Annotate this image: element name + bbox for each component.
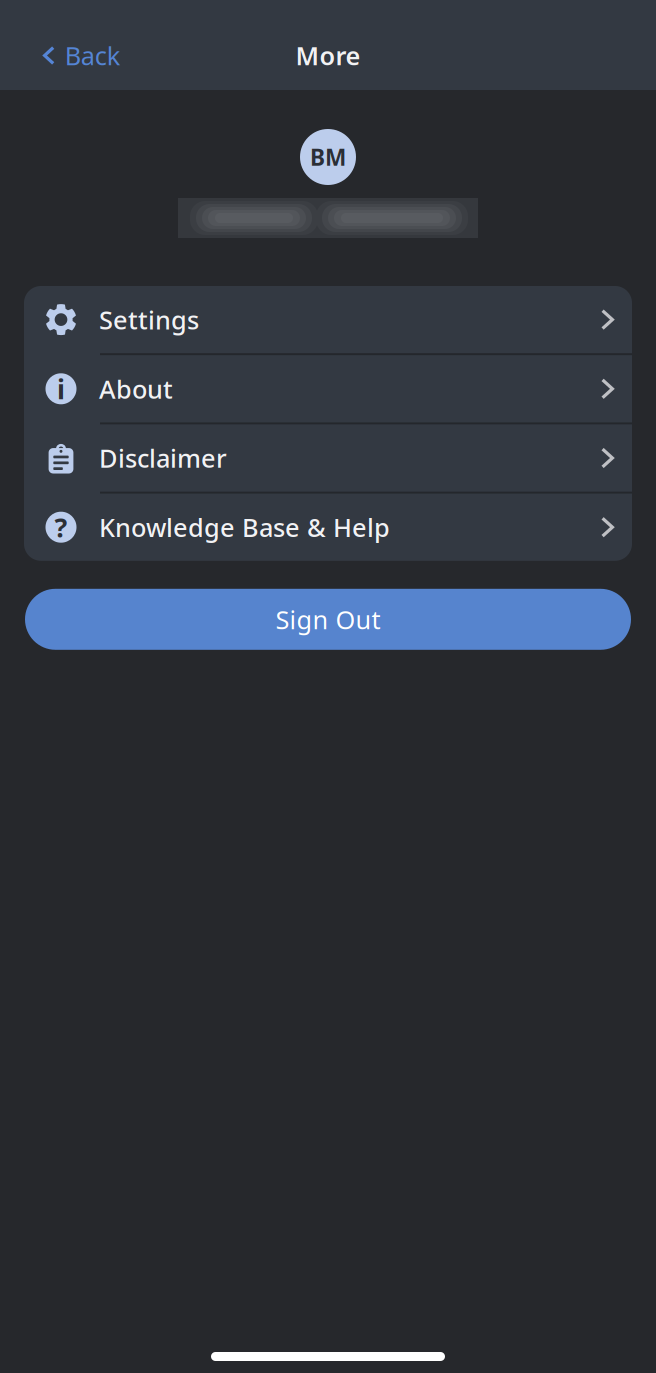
button[interactable]: ? xyxy=(24,494,632,561)
button[interactable]: i xyxy=(24,355,632,422)
staticText: Knowledge Base & Help xyxy=(99,510,390,544)
button[interactable]: Disclaimer xyxy=(24,424,632,492)
button[interactable]: Settings xyxy=(24,286,632,353)
staticText: More xyxy=(295,39,360,72)
staticText: i xyxy=(57,371,65,406)
staticText: ? xyxy=(54,509,67,545)
staticText: Settings xyxy=(99,303,199,336)
staticText: BM xyxy=(310,142,346,172)
button[interactable]: Sign Out xyxy=(25,589,631,650)
staticText: Disclaimer xyxy=(99,441,227,475)
button[interactable]: Back xyxy=(0,29,137,82)
staticText: Back xyxy=(65,39,121,72)
staticText: Sign Out xyxy=(275,602,380,636)
staticText: About xyxy=(99,372,173,406)
